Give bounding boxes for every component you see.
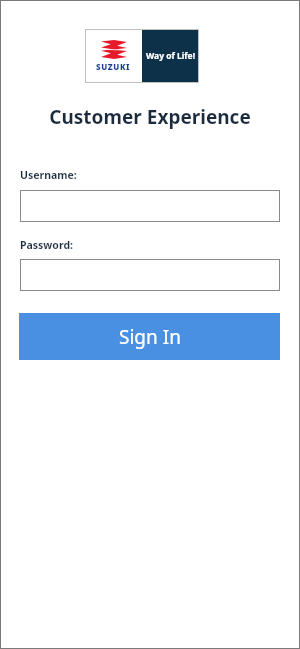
other: Suzuki logo [101, 40, 127, 59]
staticText: Password: [20, 238, 73, 252]
staticText: Way of Life! [146, 50, 196, 62]
staticText: Sign In [119, 324, 181, 350]
button[interactable] [20, 259, 280, 291]
button[interactable] [20, 190, 280, 222]
staticText: Customer Experience [49, 104, 251, 130]
button[interactable]: Sign In [19, 313, 280, 360]
staticText: SUZUKI [96, 61, 131, 72]
staticText: Username: [20, 168, 77, 182]
